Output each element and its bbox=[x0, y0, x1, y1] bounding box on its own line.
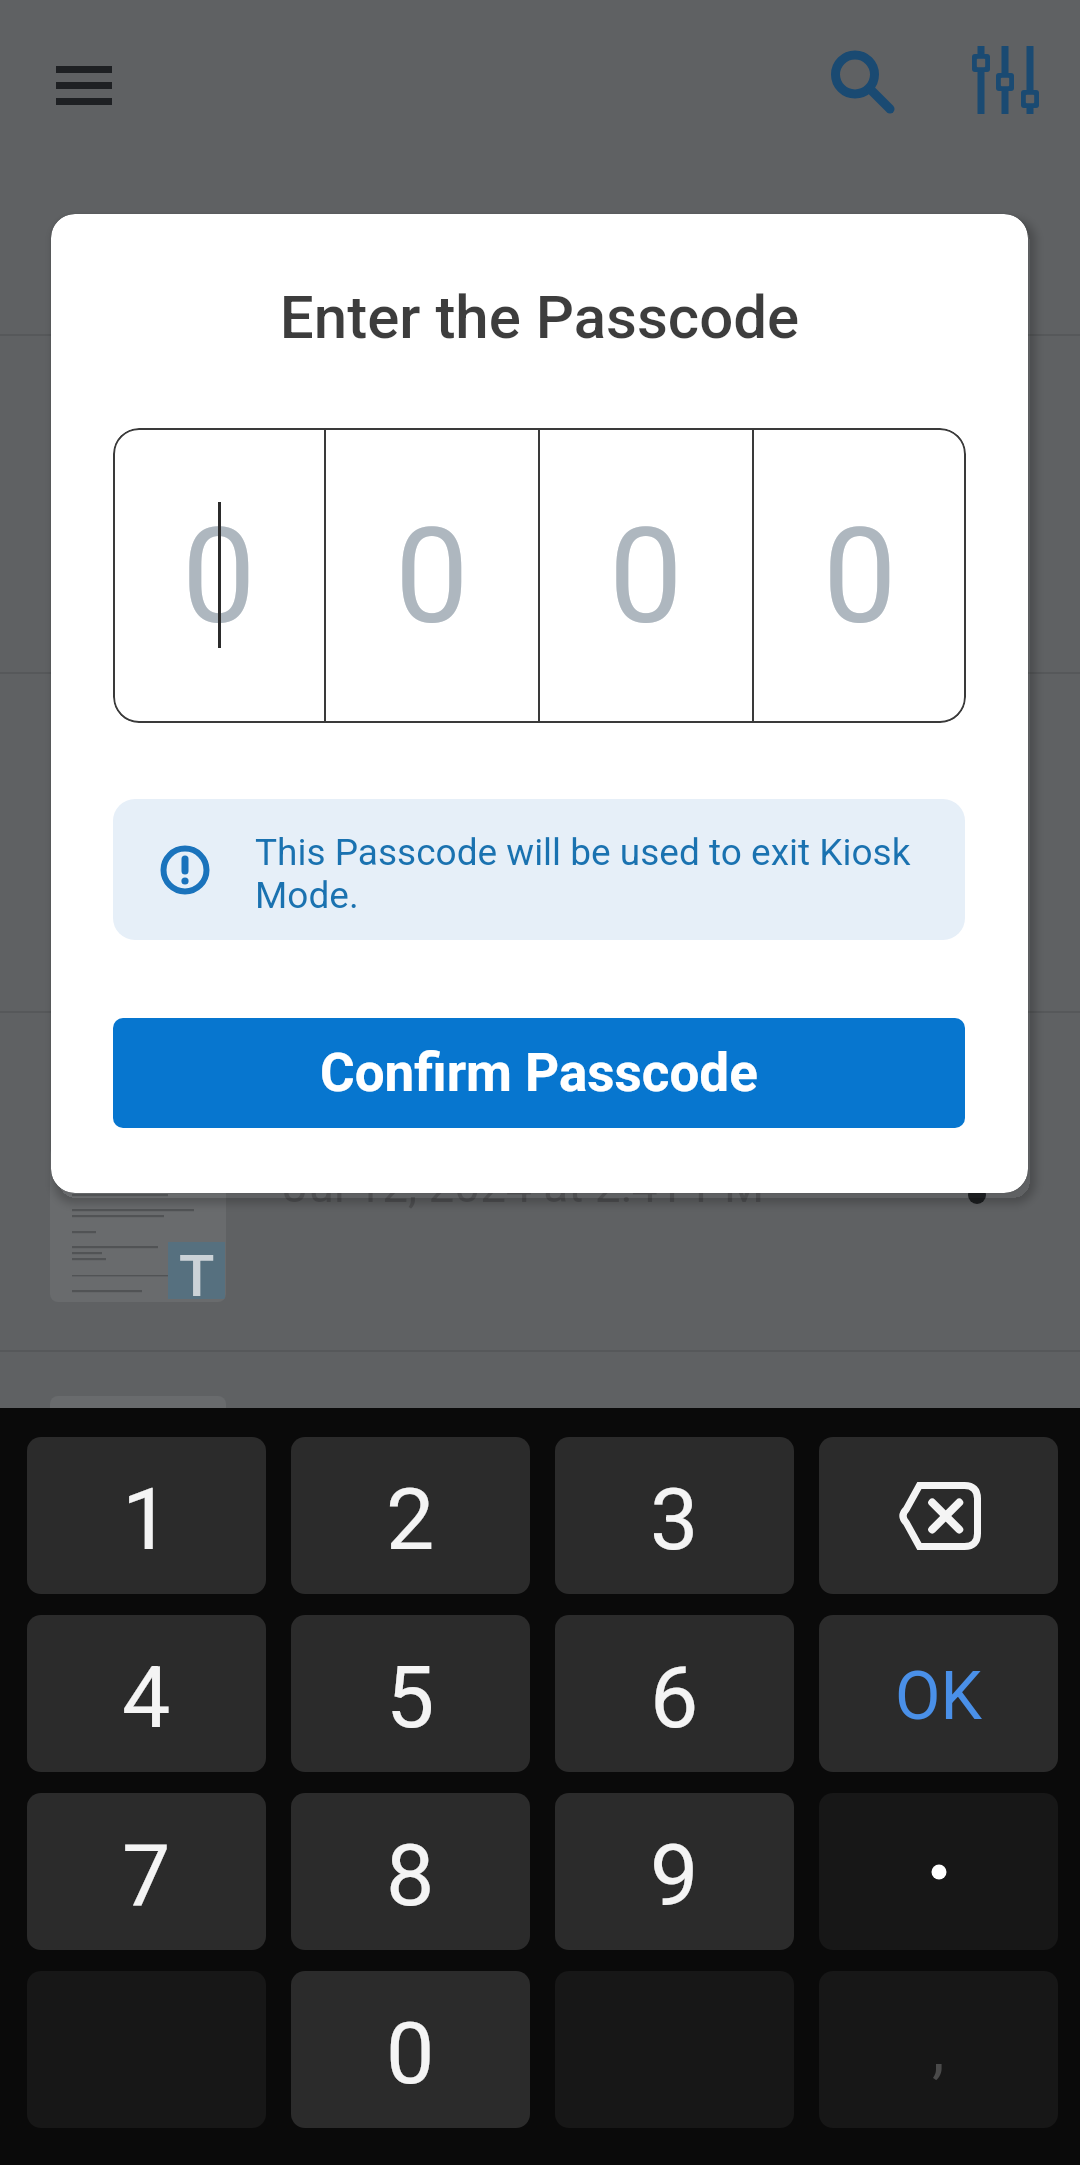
staticText: 1 bbox=[122, 1469, 171, 1570]
button[interactable]: 8 bbox=[291, 1793, 530, 1950]
button[interactable]: 0 bbox=[540, 428, 752, 723]
button[interactable]: 2 bbox=[291, 1437, 530, 1594]
staticText: 0 bbox=[609, 500, 683, 654]
staticText: Confirm Passcode bbox=[320, 1042, 758, 1104]
staticText: T bbox=[179, 1242, 215, 1299]
staticText: 4 bbox=[122, 1647, 171, 1748]
button[interactable]: Search bbox=[808, 28, 908, 128]
button[interactable]: 4 bbox=[27, 1615, 266, 1772]
button[interactable]: 3 bbox=[555, 1437, 794, 1594]
staticText: 7 bbox=[122, 1825, 171, 1926]
staticText: 9 bbox=[650, 1825, 699, 1926]
staticText: 8 bbox=[386, 1825, 435, 1926]
staticText: 6 bbox=[650, 1647, 699, 1748]
staticText: Enter the Passcode bbox=[51, 282, 1028, 352]
button[interactable]: 6 bbox=[555, 1615, 794, 1772]
button[interactable]: Confirm Passcode bbox=[113, 1018, 965, 1128]
staticText: 0 bbox=[395, 500, 469, 654]
staticText: , bbox=[932, 2012, 945, 2087]
button[interactable]: 9 bbox=[555, 1793, 794, 1950]
staticText: 0 bbox=[182, 500, 256, 654]
button[interactable]: 0 bbox=[754, 428, 966, 723]
staticText: 0 bbox=[386, 2003, 435, 2104]
staticText: This Passcode will be used to exit Kiosk… bbox=[255, 831, 915, 917]
staticText: 5 bbox=[386, 1647, 435, 1748]
button[interactable]: 5 bbox=[291, 1615, 530, 1772]
staticText: Jul 12, 2024 at 2:41 PM bbox=[283, 1159, 765, 1213]
button[interactable]: 0 bbox=[291, 1971, 530, 2128]
button[interactable]: Filter settings bbox=[955, 28, 1059, 132]
button[interactable]: 7 bbox=[27, 1793, 266, 1950]
staticText: OK bbox=[895, 1658, 982, 1735]
staticText: 0 bbox=[823, 500, 897, 654]
button[interactable]: 0 bbox=[326, 428, 538, 723]
button[interactable]: Delete bbox=[819, 1437, 1058, 1594]
button[interactable]: 0 bbox=[113, 428, 324, 723]
button[interactable]: Decimal point bbox=[819, 1793, 1058, 1950]
staticText: 2 bbox=[386, 1469, 435, 1570]
button[interactable]: Menu bbox=[34, 35, 134, 135]
staticText: 3 bbox=[650, 1469, 699, 1570]
button[interactable]: OK bbox=[819, 1615, 1058, 1772]
button[interactable]: 1 bbox=[27, 1437, 266, 1594]
